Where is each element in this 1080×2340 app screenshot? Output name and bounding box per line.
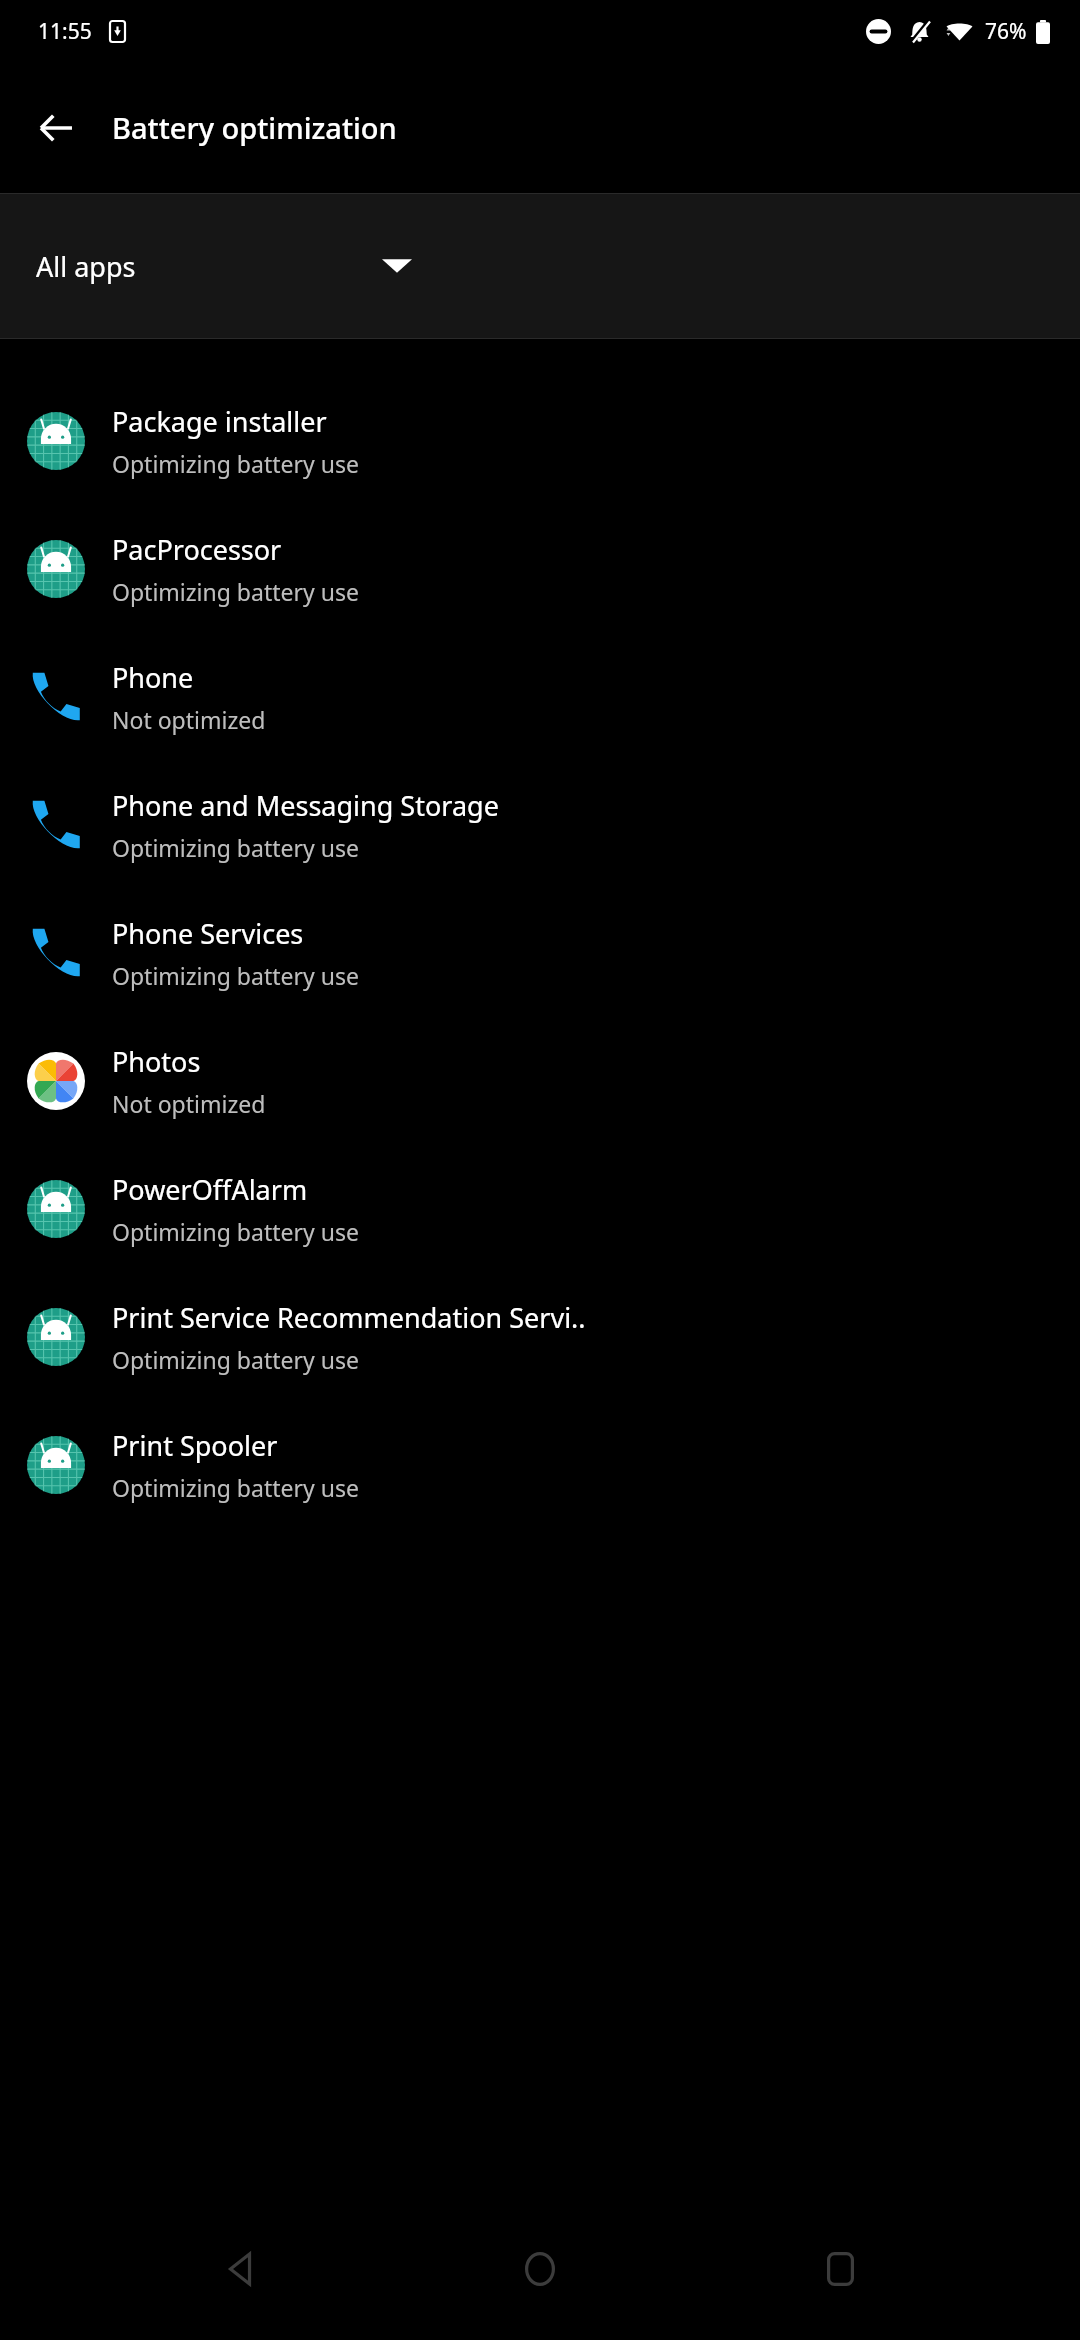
staticText: Optimizing battery use — [112, 960, 359, 991]
staticText: Optimizing battery use — [112, 448, 359, 479]
staticText: Package installer — [112, 403, 327, 440]
staticText: Optimizing battery use — [112, 576, 359, 607]
button[interactable]: Phone Services — [0, 889, 1080, 1017]
staticText: Optimizing battery use — [112, 1344, 359, 1375]
button[interactable]: Recent apps — [780, 2209, 900, 2329]
staticText: Print Spooler — [112, 1427, 278, 1464]
button[interactable]: PowerOffAlarm — [0, 1145, 1080, 1273]
button[interactable]: Package installer — [0, 377, 1080, 505]
staticText: Print Service Recommendation Servi.. — [112, 1299, 586, 1336]
button[interactable]: Phone — [0, 633, 1080, 761]
staticText: All apps — [36, 248, 136, 285]
button[interactable]: PacProcessor — [0, 505, 1080, 633]
staticText: PacProcessor — [112, 531, 282, 568]
staticText: Photos — [112, 1043, 201, 1080]
staticText: Not optimized — [112, 1088, 266, 1119]
button[interactable]: Phone and Messaging Storage — [0, 761, 1080, 889]
button[interactable]: All apps — [0, 194, 1080, 338]
staticText: Optimizing battery use — [112, 1216, 359, 1247]
staticText: Battery optimization — [112, 108, 397, 147]
button[interactable]: Photos — [0, 1017, 1080, 1145]
staticText: 76% — [985, 17, 1027, 46]
staticText: PowerOffAlarm — [112, 1171, 308, 1208]
staticText: 11:55 — [38, 17, 92, 46]
staticText: Optimizing battery use — [112, 1472, 359, 1503]
button[interactable]: Back — [180, 2209, 300, 2329]
staticText: Phone and Messaging Storage — [112, 787, 499, 824]
staticText: Phone Services — [112, 915, 304, 952]
button[interactable]: Print Spooler — [0, 1401, 1080, 1529]
button[interactable]: Print Service Recommendation Servi.. — [0, 1273, 1080, 1401]
staticText: Phone — [112, 659, 194, 696]
staticText: Not optimized — [112, 704, 266, 735]
button[interactable]: Home — [480, 2209, 600, 2329]
staticText: Optimizing battery use — [112, 832, 359, 863]
button[interactable]: Back — [18, 90, 94, 166]
